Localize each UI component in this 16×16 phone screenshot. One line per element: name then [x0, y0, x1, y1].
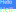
staticText: Hello: [0, 5, 15, 16]
staticText: Hello: [0, 0, 12, 5]
